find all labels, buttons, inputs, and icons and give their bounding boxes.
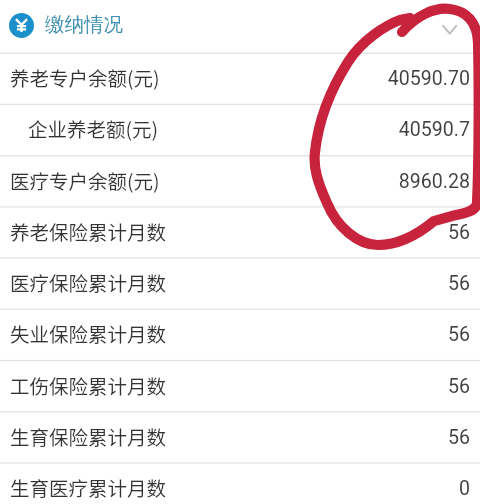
button[interactable]: 生育医疗累计月数 bbox=[0, 463, 480, 504]
button[interactable]: 生育保险累计月数 bbox=[0, 412, 480, 463]
button[interactable]: 失业保险累计月数 bbox=[0, 309, 480, 360]
staticText: 生育医疗累计月数 bbox=[10, 473, 167, 501]
staticText: 医疗保险累计月数 bbox=[10, 268, 167, 296]
staticText: 8960.28 bbox=[398, 170, 470, 193]
staticText: 养老专户余额(元) bbox=[10, 63, 160, 91]
staticText: 企业养老额(元) bbox=[28, 114, 159, 142]
staticText: 0 bbox=[458, 477, 470, 500]
staticText: 生育保险累计月数 bbox=[10, 422, 167, 450]
button[interactable]: Collapse 缴纳情况 bbox=[441, 13, 469, 41]
staticText: 56 bbox=[447, 323, 470, 346]
staticText: 医疗专户余额(元) bbox=[10, 166, 160, 194]
button[interactable]: 医疗保险累计月数 bbox=[0, 258, 480, 309]
staticText: 40590.7 bbox=[398, 118, 470, 141]
button[interactable]: 医疗专户余额(元) bbox=[0, 156, 480, 207]
button[interactable]: 缴纳情况 bbox=[0, 0, 480, 53]
button[interactable]: 养老保险累计月数 bbox=[0, 207, 480, 258]
staticText: 缴纳情况 bbox=[45, 12, 123, 37]
button[interactable]: 养老专户余额(元) bbox=[0, 53, 480, 104]
staticText: 56 bbox=[447, 426, 470, 449]
staticText: 56 bbox=[447, 221, 470, 244]
staticText: 工伤保险累计月数 bbox=[10, 371, 167, 399]
staticText: 养老保险累计月数 bbox=[10, 217, 167, 245]
staticText: 56 bbox=[447, 375, 470, 398]
staticText: 56 bbox=[447, 272, 470, 295]
button[interactable]: 工伤保险累计月数 bbox=[0, 361, 480, 412]
staticText: 40590.70 bbox=[387, 67, 470, 90]
button[interactable]: 企业养老额(元) bbox=[0, 104, 480, 155]
staticText: 失业保险累计月数 bbox=[10, 319, 167, 347]
